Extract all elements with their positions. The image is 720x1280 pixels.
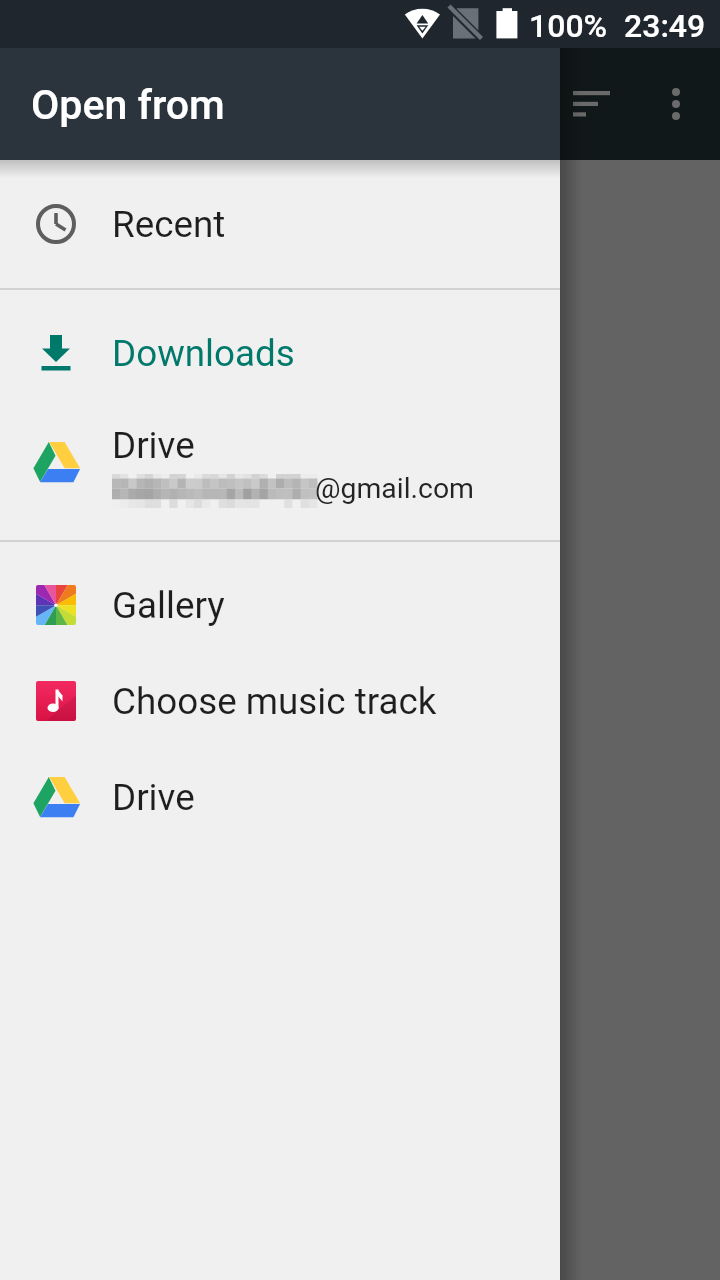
staticText: Open from — [31, 81, 225, 129]
button[interactable]: Drive — [0, 401, 560, 524]
button[interactable]: Gallery — [0, 557, 560, 653]
staticText: Choose music track — [112, 680, 437, 723]
staticText: 23:49 — [624, 7, 706, 45]
button[interactable]: Choose music track — [0, 653, 560, 749]
button[interactable]: Sort — [568, 80, 616, 128]
button[interactable]: More options — [652, 80, 700, 128]
staticText: Downloads — [112, 332, 295, 375]
button[interactable]: Recent — [0, 176, 560, 272]
staticText: Recent — [112, 203, 226, 246]
button[interactable]: Drive — [0, 749, 560, 845]
staticText: @gmail.com — [315, 472, 475, 505]
staticText: Drive — [112, 776, 195, 819]
staticText: Drive — [112, 424, 195, 467]
staticText: Gallery — [112, 584, 225, 627]
staticText: 100% — [529, 7, 608, 45]
button[interactable]: Downloads — [0, 305, 560, 401]
